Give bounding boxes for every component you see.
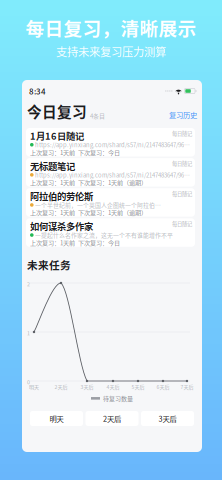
staticText: 待复习数量 (103, 394, 133, 403)
staticText: 今日复习 (27, 100, 87, 122)
staticText: 上次复习：1天前 下次复习：今日 (30, 148, 120, 157)
staticText: 3天后 (158, 413, 176, 424)
button[interactable]: 复习历史 (169, 111, 197, 122)
button[interactable]: 如何谋杀多作家 (26, 218, 195, 247)
button[interactable]: 3天后 (141, 411, 194, 426)
staticText: 明天 (49, 413, 63, 424)
staticText: 0 (27, 378, 30, 386)
staticText: 阿拉伯的劳伦斯 (30, 189, 93, 203)
staticText: 1 (27, 329, 30, 337)
button[interactable]: 1月16日随记 (26, 128, 195, 156)
staticText: 7天后 (180, 383, 193, 390)
staticText: 一个半世纪前，一个英国人企图统一个阿拉伯… (35, 201, 161, 209)
staticText: 每日随记 (172, 129, 192, 137)
staticText: 每日随记 (172, 220, 192, 227)
staticText: 无标题笔记 (30, 159, 75, 173)
staticText: 2天后 (103, 413, 121, 424)
staticText: 每日复习，清晰展示 (25, 14, 196, 41)
staticText: 支持未来复习压力测算 (56, 43, 166, 59)
staticText: 5天后 (131, 383, 144, 390)
staticText: 6天后 (156, 383, 169, 390)
staticText: https://app.yinxiang.com/shard/s57/ni/21… (35, 140, 190, 149)
staticText: 每日随记 (172, 160, 192, 167)
staticText: 2天后 (54, 383, 67, 390)
staticText: 4天后 (106, 383, 119, 390)
staticText: 一提起什么名作家之流，这无一个不有谁能增作不平 (35, 231, 173, 239)
staticText: 1月16日随记 (30, 129, 84, 142)
button[interactable]: 阿拉伯的劳伦斯 (26, 188, 195, 217)
staticText: 复习历史 (169, 109, 197, 120)
staticText: https://app.yinxiang.com/shard/s57/ni/21… (35, 171, 190, 179)
staticText: 如何谋杀多作家 (30, 219, 93, 233)
staticText: 未来任务 (27, 257, 71, 272)
staticText: 3天后 (80, 383, 93, 390)
staticText: 明天 (29, 383, 39, 390)
staticText: 每日随记 (172, 190, 192, 197)
staticText: 上次复习：1天前 下次复习：1天前（逾期） (30, 208, 147, 217)
button[interactable]: 2天后 (85, 411, 138, 426)
staticText: 上次复习：1天前 下次复习：今日 (30, 238, 120, 247)
staticText: 4条目 (90, 111, 105, 120)
button[interactable]: 无标题笔记 (26, 158, 195, 187)
staticText: 2 (27, 280, 30, 288)
staticText: 8:34 (29, 85, 46, 97)
button[interactable]: 明天 (30, 411, 83, 426)
staticText: 上次复习：1天前 下次复习：1天前（逾期） (30, 178, 147, 187)
